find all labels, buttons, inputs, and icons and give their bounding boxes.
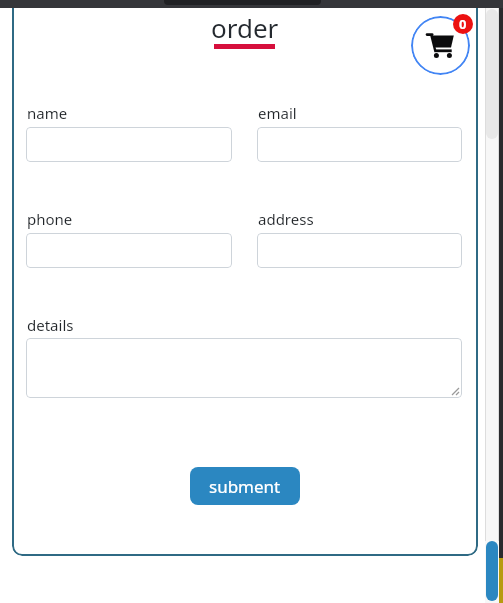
staticText: name (27, 103, 68, 123)
staticText: subment (209, 475, 281, 498)
staticText: email (258, 103, 297, 123)
button[interactable] (26, 233, 232, 268)
button[interactable] (411, 16, 470, 75)
button[interactable] (26, 127, 232, 162)
button[interactable] (257, 127, 462, 162)
button[interactable] (26, 338, 462, 398)
staticText: 0 (459, 15, 467, 33)
staticText: details (27, 315, 74, 335)
staticText: order (211, 10, 279, 45)
staticText: address (258, 209, 314, 229)
button[interactable]: subment (190, 467, 300, 505)
button[interactable] (257, 233, 462, 268)
staticText: phone (27, 209, 73, 229)
